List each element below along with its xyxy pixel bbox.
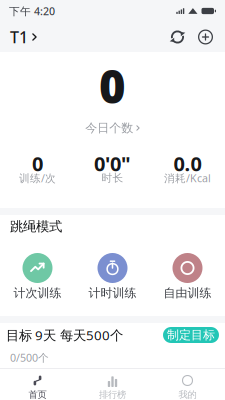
staticText: 首页 (28, 389, 46, 400)
staticText: 排行榜 (99, 389, 126, 400)
staticText: 今日个数 (85, 121, 133, 135)
staticText: 制定目标 (167, 328, 215, 342)
staticText: 0.0 (173, 150, 201, 177)
staticText: 计次训练 (13, 286, 61, 300)
button[interactable]: T1 (0, 20, 47, 54)
staticText: 0'0" (94, 150, 131, 177)
staticText: T1 (10, 26, 28, 48)
button[interactable]: 排行榜 (75, 369, 150, 400)
staticText: 计时训练 (88, 286, 136, 300)
staticText: 自由训练 (163, 286, 211, 300)
staticText: 我的 (178, 389, 196, 400)
staticText: 0 (32, 150, 43, 177)
staticText: 跳绳模式 (10, 218, 62, 235)
button[interactable]: Sync (163, 22, 192, 51)
button[interactable]: 制定目标 (163, 327, 219, 343)
staticText: 时长 (101, 171, 123, 184)
staticText: 0 (99, 56, 126, 116)
staticText: 目标 9天 每天500个 (6, 326, 123, 344)
staticText: 消耗/Kcal (164, 171, 211, 185)
staticText: 0/500个 (10, 350, 49, 365)
button[interactable]: Add (192, 23, 219, 50)
staticText: 训练/次 (19, 171, 56, 185)
button[interactable]: 首页 (0, 369, 75, 400)
button[interactable]: 今日个数 (79, 117, 146, 139)
button[interactable]: 我的 (150, 369, 225, 400)
button[interactable]: 自由训练 (150, 251, 225, 301)
staticText: 下午 4:20 (9, 4, 55, 18)
button[interactable]: 计次训练 (0, 251, 75, 301)
button[interactable]: 计时训练 (75, 251, 150, 301)
